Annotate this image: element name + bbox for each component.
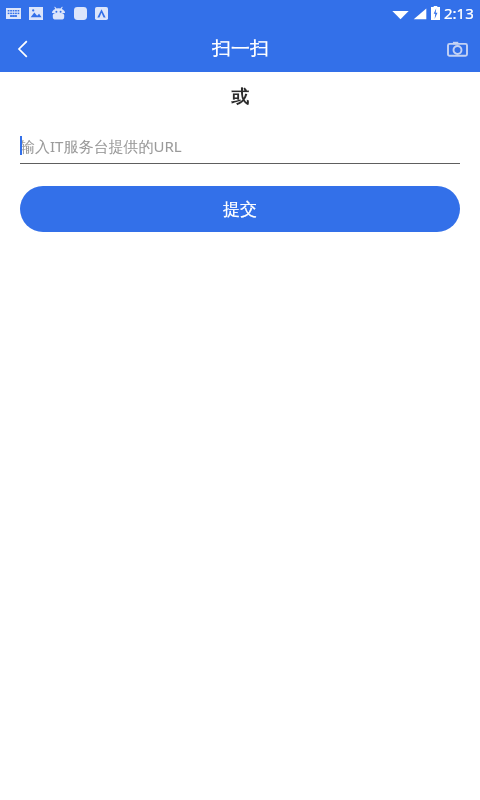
button[interactable]: Camera — [434, 26, 480, 72]
button[interactable]: 输入IT服务台提供的URL — [20, 132, 460, 164]
staticText: 2:13 — [444, 3, 474, 23]
staticText: 或 — [231, 86, 249, 109]
staticText: 输入IT服务台提供的URL — [20, 136, 182, 156]
button[interactable]: Back — [0, 26, 46, 72]
button[interactable]: 提交 — [20, 186, 460, 232]
staticText: 提交 — [223, 199, 257, 220]
staticText: 扫一扫 — [212, 37, 269, 61]
